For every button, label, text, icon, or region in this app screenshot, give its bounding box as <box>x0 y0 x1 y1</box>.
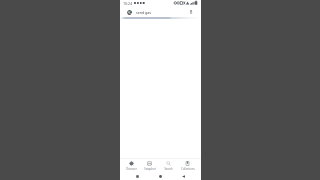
staticText: 10:24 <box>123 1 133 6</box>
button[interactable]: Recents <box>133 172 141 180</box>
button[interactable]: Collections <box>178 159 197 171</box>
button[interactable]: Back <box>179 172 187 180</box>
staticText: send gas <box>136 10 152 15</box>
button[interactable]: Home <box>156 172 164 180</box>
staticText: Discover <box>126 167 137 171</box>
button[interactable]: Snapshot <box>140 159 159 171</box>
button[interactable]: Discover <box>122 159 140 171</box>
button[interactable]: Voice search <box>188 9 194 15</box>
staticText: Collections <box>181 167 195 171</box>
staticText: Search <box>164 167 173 171</box>
button[interactable]: Search <box>159 159 178 171</box>
staticText: Snapshot <box>144 167 156 171</box>
